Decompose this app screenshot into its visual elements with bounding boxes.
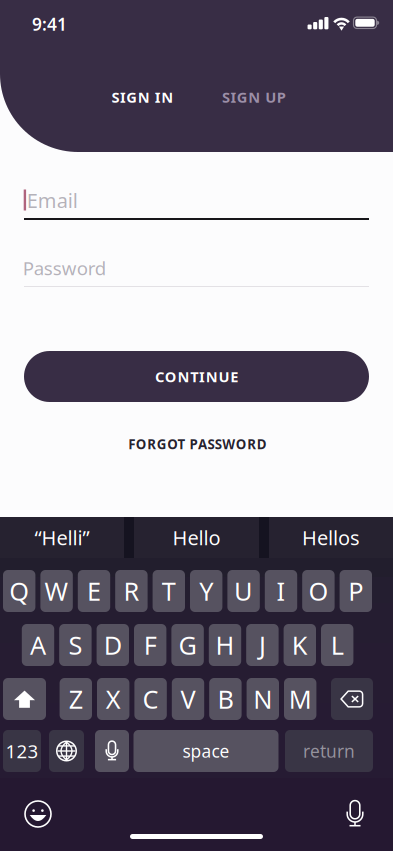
button[interactable]: Dictate — [331, 792, 379, 836]
button[interactable]: Hellos — [269, 517, 393, 558]
button[interactable]: M — [284, 678, 316, 720]
staticText: 123 — [5, 739, 38, 763]
button[interactable]: N — [247, 678, 279, 720]
staticText: E — [87, 574, 101, 608]
button[interactable]: Shift — [3, 678, 46, 720]
staticText: CONTINUE — [155, 367, 238, 386]
staticText: 9:41 — [32, 12, 67, 35]
button[interactable]: Dictation — [95, 730, 129, 772]
staticText: Hellos — [302, 524, 360, 551]
button[interactable]: Hello — [134, 517, 259, 558]
staticText: T — [162, 574, 176, 608]
button[interactable]: L — [321, 624, 353, 666]
staticText: Y — [199, 574, 213, 608]
button[interactable]: A — [22, 624, 54, 666]
staticText: H — [215, 628, 234, 662]
staticText: J — [259, 628, 266, 662]
button[interactable]: B — [209, 678, 242, 720]
staticText: K — [292, 628, 308, 662]
button[interactable]: J — [246, 624, 279, 666]
staticText: B — [217, 682, 233, 716]
button[interactable]: F — [134, 624, 166, 666]
staticText: Z — [69, 682, 83, 716]
staticText: FORGOT PASSWORD — [128, 435, 267, 453]
staticText: Hello — [172, 524, 220, 551]
staticText: X — [106, 682, 121, 716]
staticText: G — [179, 628, 197, 662]
staticText: D — [104, 628, 122, 662]
staticText: W — [45, 574, 69, 608]
button[interactable]: R — [115, 570, 148, 612]
staticText: “Helli” — [34, 524, 89, 551]
staticText: P — [348, 574, 363, 608]
staticText: F — [144, 628, 157, 662]
staticText: SIGN UP — [222, 87, 286, 107]
staticText: L — [331, 628, 344, 662]
staticText: R — [123, 574, 139, 608]
button[interactable]: FORGOT PASSWORD — [82, 433, 312, 455]
button[interactable]: D — [97, 624, 129, 666]
button[interactable]: space — [133, 730, 278, 772]
staticText: Q — [9, 574, 29, 608]
staticText: U — [234, 574, 253, 608]
button[interactable]: P — [340, 570, 372, 612]
staticText: SIGN IN — [111, 87, 173, 107]
button[interactable]: SIGN UP — [211, 82, 297, 112]
button[interactable]: Delete — [331, 678, 373, 720]
staticText: C — [143, 682, 159, 716]
staticText: M — [289, 682, 312, 716]
button[interactable]: Z — [60, 678, 92, 720]
button[interactable]: O — [302, 570, 335, 612]
button[interactable]: K — [284, 624, 316, 666]
button[interactable]: V — [172, 678, 204, 720]
button[interactable]: X — [97, 678, 129, 720]
staticText: A — [30, 628, 46, 662]
staticText: N — [253, 682, 272, 716]
button[interactable]: S — [59, 624, 92, 666]
button[interactable]: W — [40, 570, 73, 612]
staticText: return — [303, 739, 355, 762]
staticText: Password — [23, 255, 106, 280]
button[interactable]: CONTINUE — [24, 351, 369, 402]
staticText: O — [308, 574, 328, 608]
staticText: V — [180, 682, 195, 716]
button[interactable]: Emoji — [14, 792, 62, 836]
button[interactable]: H — [209, 624, 241, 666]
button[interactable]: C — [134, 678, 167, 720]
button[interactable]: return — [285, 730, 373, 772]
button[interactable]: Q — [3, 570, 35, 612]
staticText: I — [276, 574, 285, 608]
staticText: Email — [27, 187, 78, 214]
staticText: space — [182, 739, 229, 762]
button[interactable]: U — [227, 570, 260, 612]
button[interactable]: Next keyboard — [49, 730, 84, 772]
button[interactable]: G — [171, 624, 204, 666]
button[interactable]: I — [265, 570, 297, 612]
button[interactable]: E — [78, 570, 110, 612]
button[interactable]: 123 — [3, 730, 41, 772]
staticText: S — [68, 628, 82, 662]
button[interactable]: “Helli” — [0, 517, 124, 558]
button[interactable]: SIGN IN — [99, 82, 185, 112]
button[interactable]: T — [153, 570, 185, 612]
button[interactable]: Y — [190, 570, 222, 612]
